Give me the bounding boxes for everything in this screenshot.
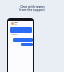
staticText: from the support bbox=[19, 8, 45, 12]
staticText: Chat with teams bbox=[20, 5, 45, 9]
